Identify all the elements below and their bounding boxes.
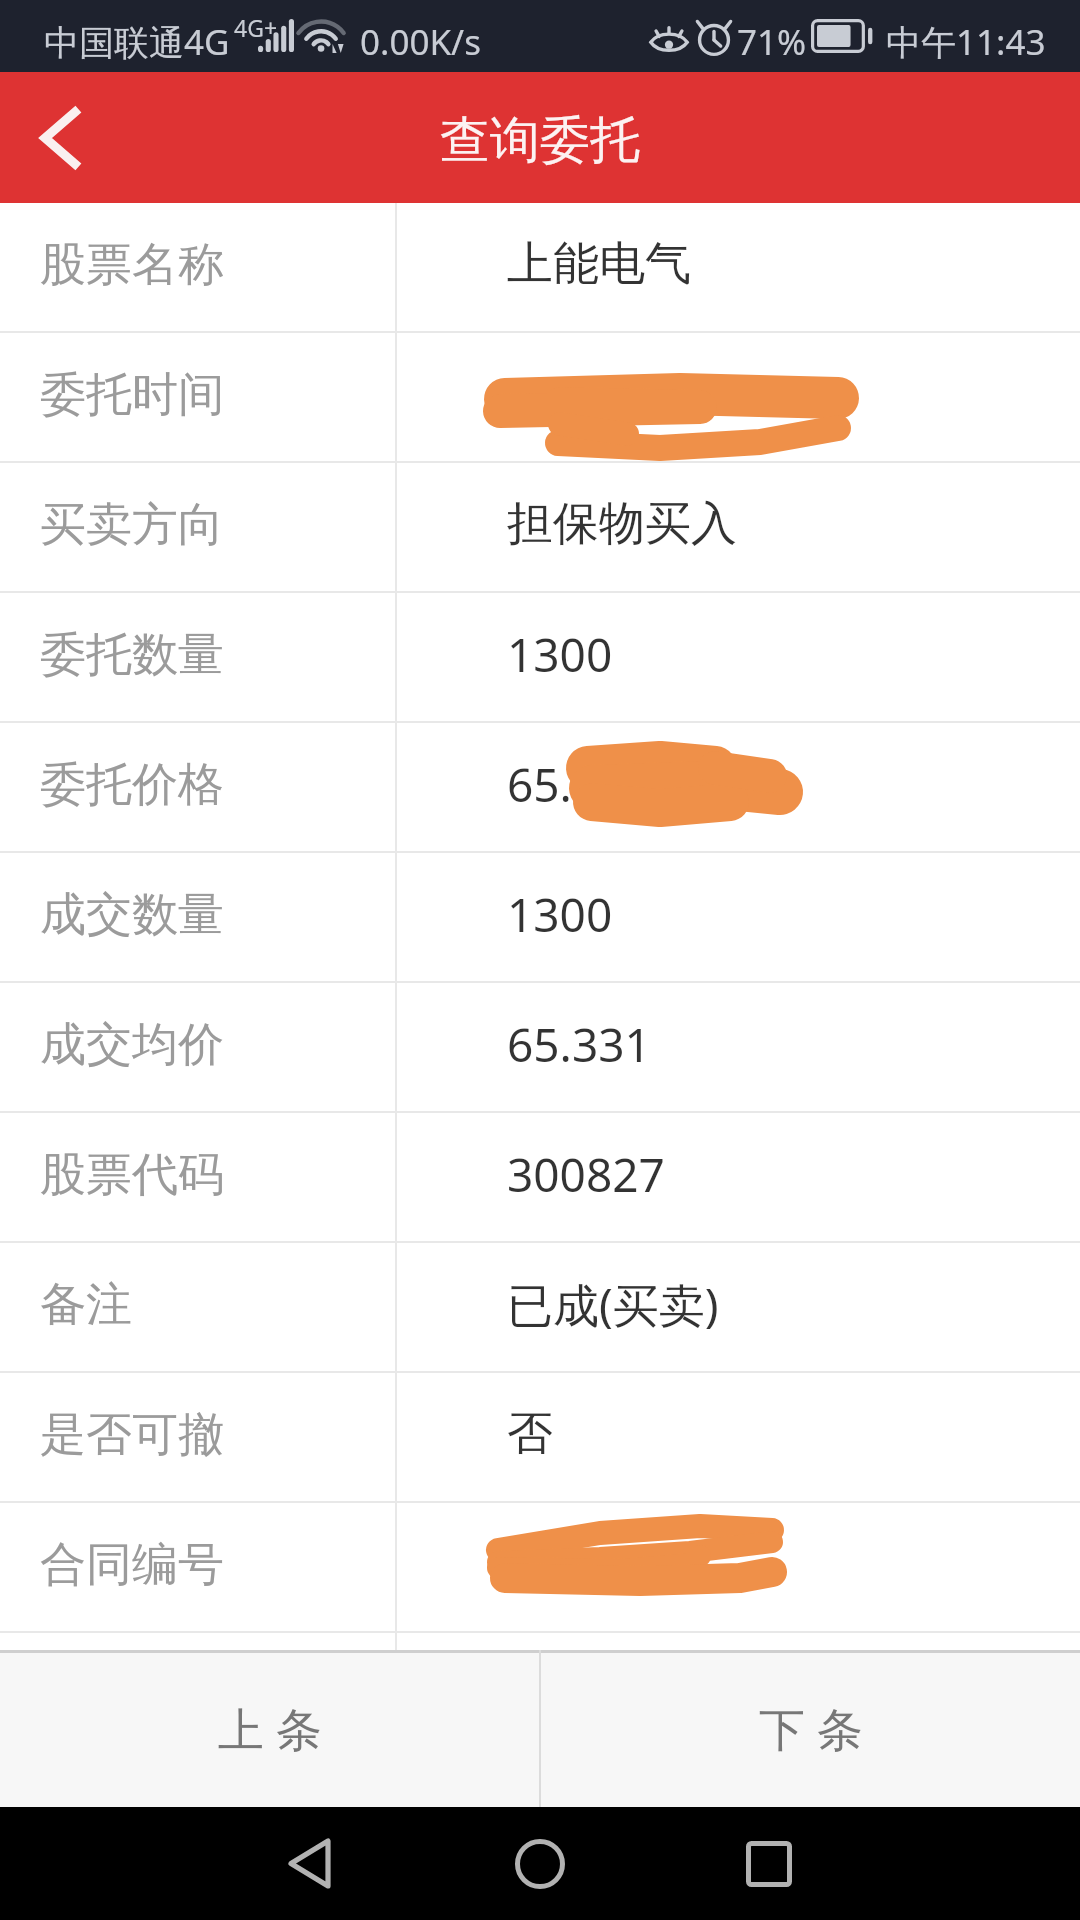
button[interactable]: Back: [0, 72, 130, 203]
button[interactable]: 上 条: [0, 1650, 539, 1807]
staticText: 已成(买卖): [507, 1273, 719, 1336]
staticText: 成交均价: [40, 1016, 224, 1074]
staticText: 股票代码: [40, 1146, 224, 1204]
staticText: 成交数量: [40, 886, 224, 944]
staticText: 中国联通4G: [44, 18, 230, 66]
button[interactable]: 成交均价: [0, 983, 1080, 1113]
button[interactable]: Recent apps: [711, 1807, 827, 1920]
staticText: 1300: [507, 883, 613, 946]
staticText: 是否可撤: [40, 1406, 224, 1464]
staticText: 65.3: [507, 753, 599, 816]
staticText: 1300: [507, 623, 613, 686]
staticText: 委托价格: [40, 756, 224, 814]
staticText: 买卖方向: [40, 496, 224, 554]
staticText: 71%: [737, 18, 807, 66]
staticText: 上 条: [218, 1697, 322, 1760]
button[interactable]: 合同编号: [0, 1503, 1080, 1633]
staticText: 300827: [507, 1143, 665, 1206]
button[interactable]: Back: [251, 1807, 367, 1920]
button[interactable]: Home: [482, 1807, 598, 1920]
staticText: 0.00K/s: [360, 18, 481, 66]
staticText: 否: [507, 1405, 553, 1463]
button[interactable]: 备注: [0, 1243, 1080, 1373]
staticText: 股票名称: [40, 236, 224, 294]
staticText: 备注: [40, 1276, 132, 1334]
button[interactable]: 下 条: [541, 1650, 1080, 1807]
button[interactable]: 成交数量: [0, 853, 1080, 983]
staticText: 查询委托: [440, 109, 640, 172]
staticText: 4G+: [234, 12, 278, 43]
staticText: 中午11:43: [886, 18, 1046, 66]
button[interactable]: 买卖方向: [0, 463, 1080, 593]
staticText: 担保物买入: [507, 495, 737, 553]
staticText: 65.331: [507, 1013, 651, 1076]
button[interactable]: 股票名称: [0, 203, 1080, 333]
staticText: 委托数量: [40, 626, 224, 684]
button[interactable]: 是否可撤: [0, 1373, 1080, 1503]
button[interactable]: 委托数量: [0, 593, 1080, 723]
button[interactable]: 委托价格: [0, 723, 1080, 853]
staticText: 下 条: [759, 1697, 863, 1760]
staticText: 合同编号: [40, 1536, 224, 1594]
button[interactable]: 股票代码: [0, 1113, 1080, 1243]
button[interactable]: 委托时间: [0, 333, 1080, 463]
staticText: 上能电气: [507, 235, 691, 293]
staticText: 委托时间: [40, 366, 224, 424]
